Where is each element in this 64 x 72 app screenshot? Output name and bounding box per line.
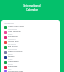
staticText: Kwanzaa [8,65,18,68]
staticText: Eid al-Fitr [8,45,18,48]
staticText: Thailand [8,38,16,40]
staticText: Obon Festival [8,50,23,53]
button[interactable]: Songkran [1,35,60,40]
staticText: Christmas Day [8,70,24,72]
button[interactable]: Holi Festival [1,30,60,35]
button[interactable]: Diwali [1,55,60,60]
button[interactable]: Vesak Day [1,40,60,45]
staticText: International Calendar [6,4,58,11]
button[interactable]: Obon Festival [1,50,60,55]
button[interactable]: Eid al-Fitr [1,45,60,50]
staticText: Holi Festival [8,30,21,33]
staticText: Israel [8,63,13,65]
staticText: Worldwide [8,48,18,50]
button[interactable]: Hanukkah [1,60,60,65]
staticText: Upcoming [4,22,14,25]
staticText: Vesak Day [8,40,19,43]
staticText: India [8,33,13,35]
button[interactable]: Kwanzaa [1,65,60,70]
staticText: Diwali [8,55,15,58]
button[interactable]: New Year's Day [1,25,60,30]
staticText: USA [8,68,12,70]
staticText: Hanukkah [8,60,19,63]
staticText: New Year's Day [8,25,25,28]
staticText: Japan [8,53,13,55]
staticText: Sri Lanka [8,43,16,45]
staticText: Songkran [8,35,18,38]
staticText: Worldwide [8,28,18,30]
button[interactable]: Christmas Day [1,70,60,72]
staticText: India [8,58,13,60]
